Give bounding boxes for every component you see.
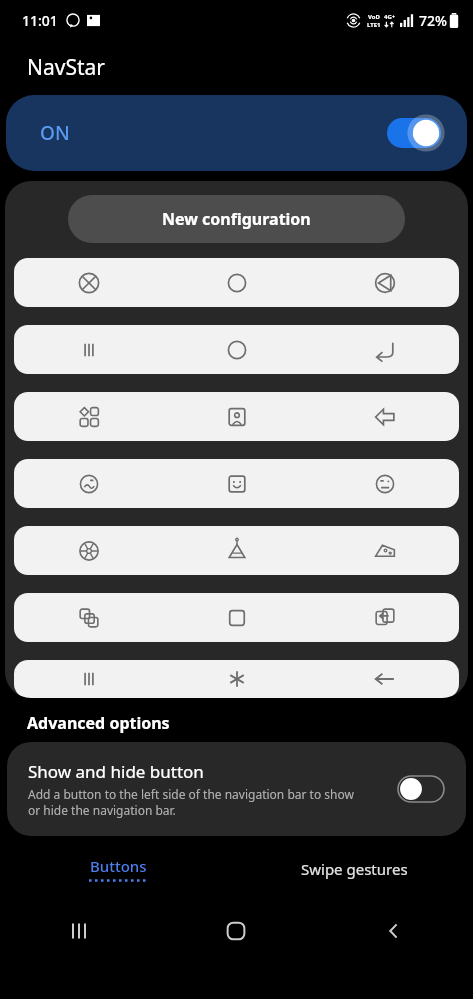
staticText: 11:01	[22, 11, 58, 30]
button[interactable]	[14, 660, 459, 698]
button[interactable]: New configuration	[68, 195, 405, 243]
staticText: NavStar	[27, 53, 105, 82]
staticText: LTE1	[367, 21, 381, 29]
staticText: Swipe gestures	[301, 859, 408, 879]
button[interactable]: Recent apps	[0, 921, 157, 941]
button[interactable]	[14, 258, 459, 307]
button[interactable]: Home	[157, 920, 315, 942]
button[interactable]	[14, 593, 459, 642]
staticText: Add a button to the left side of the nav…	[28, 786, 356, 818]
staticText: Buttons	[90, 856, 147, 876]
button[interactable]: Show and hide button	[7, 742, 466, 836]
button[interactable]: Buttons	[0, 856, 236, 882]
button[interactable]	[14, 526, 459, 575]
staticText: New configuration	[162, 208, 311, 230]
button[interactable]: Swipe gestures	[236, 859, 473, 879]
button[interactable]: Back	[315, 920, 473, 942]
staticText: 4G+	[384, 13, 396, 21]
button[interactable]	[14, 392, 459, 441]
button[interactable]: ON	[6, 95, 467, 171]
staticText: VoD	[368, 13, 380, 21]
button[interactable]	[14, 459, 459, 508]
button[interactable]	[14, 325, 459, 374]
staticText: ON	[40, 120, 70, 146]
staticText: 72%	[419, 11, 447, 30]
staticText: Advanced options	[27, 712, 170, 734]
staticText: Show and hide button	[28, 760, 204, 783]
